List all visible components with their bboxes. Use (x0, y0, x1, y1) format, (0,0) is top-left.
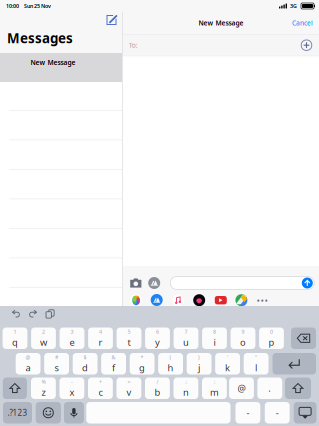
button[interactable]: 6 (145, 327, 170, 349)
staticText: r (98, 336, 102, 348)
button[interactable]: 7 (174, 327, 198, 349)
staticText: - (246, 407, 249, 419)
button[interactable]: - (235, 402, 260, 423)
staticText: . (268, 382, 271, 394)
button[interactable]: ' (215, 353, 240, 374)
button[interactable]: ( (158, 353, 183, 374)
staticText: Messages (7, 29, 73, 47)
button[interactable]: Shift (3, 377, 27, 399)
staticText: New Message (30, 58, 75, 67)
staticText: b (154, 386, 160, 398)
button[interactable]: / (145, 377, 170, 399)
button[interactable]: " (244, 353, 268, 374)
button[interactable]: Delete (291, 327, 316, 349)
staticText: z (41, 386, 45, 398)
staticText: 0 (270, 328, 273, 335)
button[interactable]: 5 (117, 327, 141, 349)
staticText: q (12, 336, 18, 348)
button[interactable]: % (31, 377, 56, 399)
button[interactable]: @ (16, 353, 40, 374)
staticText: ; (185, 378, 186, 385)
button[interactable]: New Message (106, 12, 122, 25)
button[interactable]: Emoji (36, 402, 61, 423)
button[interactable]: @ (229, 377, 254, 399)
staticText: s (55, 361, 59, 374)
staticText: Sun 25 Nov (24, 2, 51, 10)
button[interactable]: : (202, 377, 227, 399)
button[interactable]: 9 (231, 327, 255, 349)
button[interactable]: 4 (88, 327, 113, 349)
button[interactable]: Shift (285, 377, 311, 399)
staticText: 5 (127, 328, 130, 335)
button[interactable]: .?123 (3, 402, 32, 423)
button[interactable]: 0 (259, 327, 284, 349)
staticText: 6 (156, 328, 159, 335)
staticText: c (98, 386, 102, 398)
staticText: n (183, 386, 189, 398)
staticText: .?123 (7, 407, 27, 418)
button[interactable]: More Apps (255, 294, 269, 306)
staticText: & (112, 354, 116, 361)
staticText: t (127, 336, 130, 348)
staticText: # (55, 354, 58, 361)
staticText: 4 (99, 328, 102, 335)
staticText: 7 (184, 328, 187, 335)
button[interactable]: New Message (0, 53, 122, 82)
staticText: 9 (241, 328, 244, 335)
staticText: i (213, 336, 215, 348)
button[interactable]: - (265, 402, 290, 423)
staticText: j (198, 361, 200, 374)
button[interactable]: & (101, 353, 126, 374)
staticText: 8 (213, 328, 216, 335)
button[interactable]: Hide Keyboard (294, 402, 316, 423)
staticText: ' (227, 354, 228, 361)
button[interactable]: Cancel (292, 15, 319, 31)
staticText: u (183, 336, 189, 348)
staticText: ••• (256, 294, 268, 306)
button[interactable]: 3 (60, 327, 84, 349)
button[interactable]: Return (272, 353, 316, 374)
button[interactable]: - (59, 377, 84, 399)
button[interactable]: Undo (8, 307, 24, 321)
staticText: g (139, 361, 145, 374)
staticText: Cancel (292, 19, 313, 27)
staticText: ) (198, 354, 200, 361)
staticText: e (69, 336, 74, 348)
button[interactable]: # (44, 353, 69, 374)
staticText: 2 (42, 328, 45, 335)
staticText: @ (237, 382, 245, 394)
button[interactable]: = (116, 377, 141, 399)
button[interactable]: 8 (202, 327, 227, 349)
button[interactable]: Dictation (64, 402, 84, 423)
button[interactable]: + (88, 377, 113, 399)
staticText: = (127, 378, 130, 385)
staticText: p (268, 336, 274, 348)
button[interactable]: ; (173, 377, 198, 399)
staticText: a (26, 361, 31, 374)
staticText: f (112, 361, 115, 374)
button[interactable]: $ (73, 353, 97, 374)
button[interactable]: . (257, 377, 282, 399)
staticText: " (255, 354, 257, 361)
staticText: y (155, 336, 160, 348)
staticText: h (168, 361, 174, 374)
button[interactable]: * (130, 353, 154, 374)
button[interactable]: Add Contact (301, 40, 312, 51)
staticText: @ (26, 354, 31, 361)
button[interactable]: Redo (25, 307, 41, 321)
button[interactable]: App Store (148, 277, 160, 289)
button[interactable]: Paste (42, 307, 58, 321)
staticText: v (126, 386, 131, 398)
button[interactable]: ) (187, 353, 211, 374)
staticText: o (240, 336, 246, 348)
button[interactable]: 1 (3, 327, 27, 349)
staticText: d (82, 361, 88, 374)
button[interactable]: 2 (31, 327, 56, 349)
staticText: * (141, 354, 144, 361)
staticText: 3 (70, 328, 73, 335)
staticText: + (99, 378, 102, 385)
staticText: - (276, 407, 279, 419)
button[interactable]: Camera (129, 278, 143, 288)
button[interactable] (86, 402, 230, 423)
staticText: New Message (198, 19, 243, 27)
